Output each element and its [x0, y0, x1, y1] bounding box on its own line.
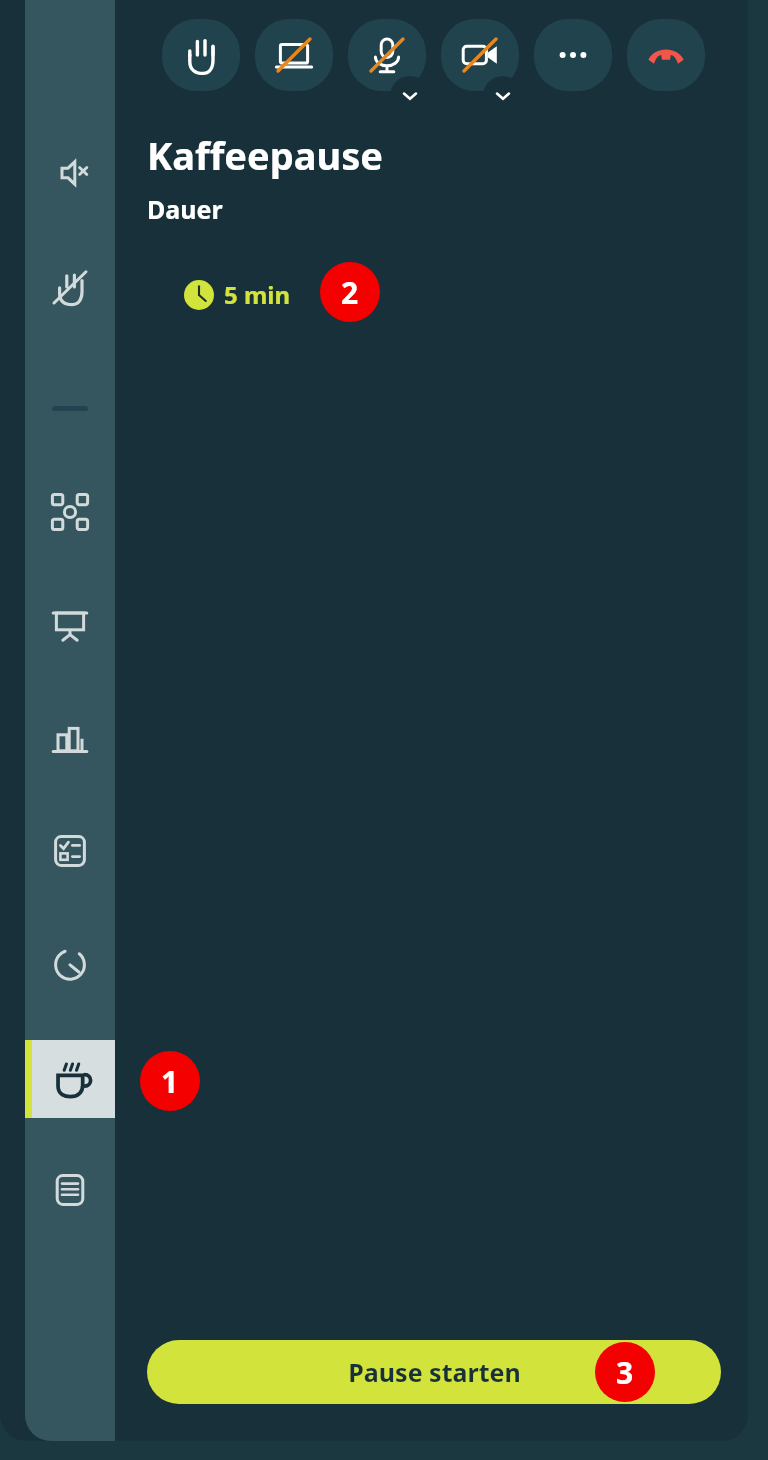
staticText: Dauer [147, 192, 223, 226]
button[interactable]: Presentation [45, 600, 95, 650]
button[interactable]: Raise hand [162, 19, 240, 91]
button[interactable]: 5 min [184, 278, 291, 311]
staticText: Pause starten [348, 1355, 521, 1389]
button[interactable]: Pause starten [147, 1340, 721, 1404]
button[interactable]: Polls [45, 713, 95, 763]
button[interactable]: Microphone muted options [390, 76, 430, 116]
staticText: 2 [341, 272, 359, 313]
button[interactable]: Coffee break [25, 1040, 115, 1118]
button[interactable]: Microphone muted [348, 19, 426, 91]
button[interactable]: Notes [45, 1165, 95, 1215]
button[interactable]: Camera off options [483, 76, 523, 116]
staticText: 3 [616, 1352, 634, 1393]
button[interactable]: Mute all [45, 148, 95, 198]
button[interactable]: Timer [45, 939, 95, 989]
staticText: 5 min [224, 278, 291, 311]
staticText: 1 [161, 1061, 179, 1102]
button[interactable]: More options [534, 19, 612, 91]
button[interactable]: Camera off [441, 19, 519, 91]
button[interactable]: Quiz [45, 826, 95, 876]
button[interactable]: Share screen off [255, 19, 333, 91]
button[interactable]: End call [627, 19, 705, 91]
button[interactable]: Lower hands [45, 262, 95, 312]
button[interactable]: Breakout rooms [45, 487, 95, 537]
staticText: Kaffeepause [147, 129, 383, 181]
